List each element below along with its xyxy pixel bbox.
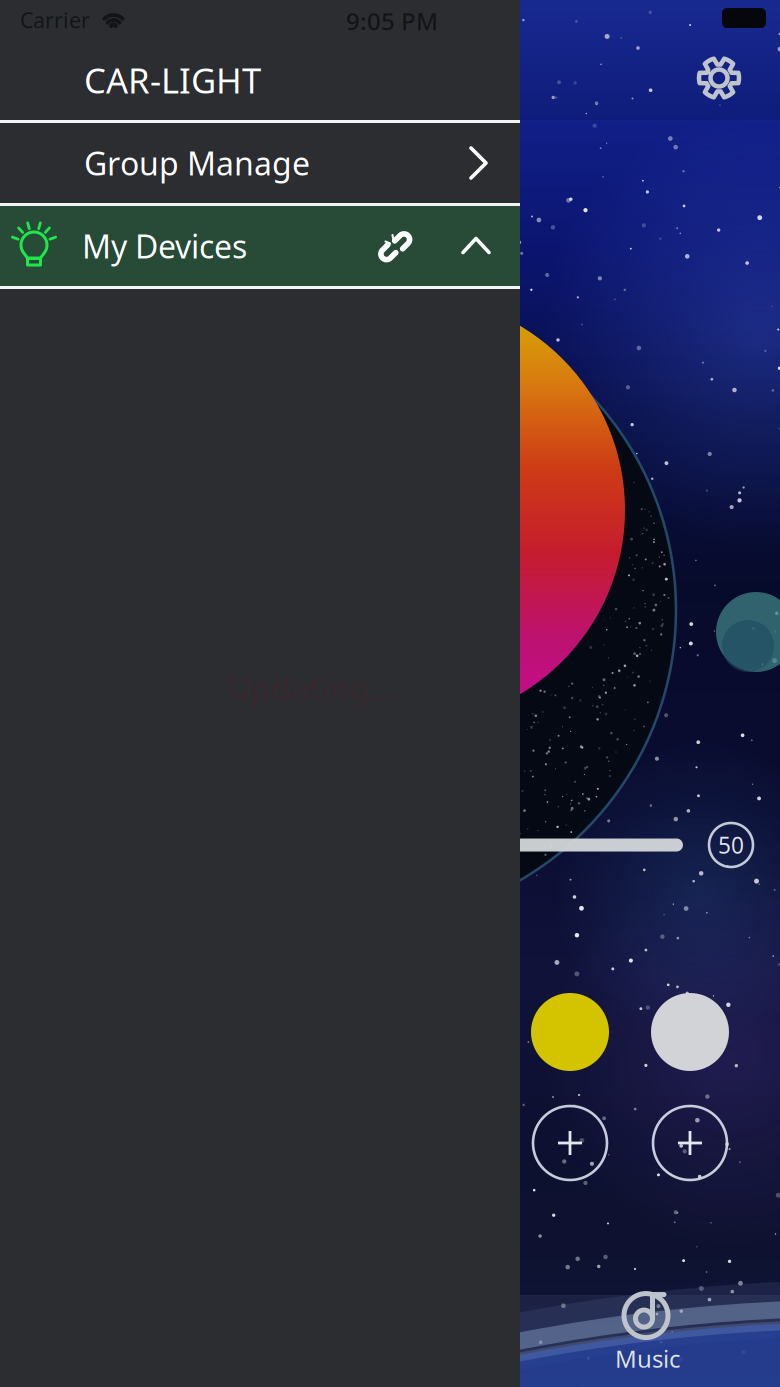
staticText: Music [615,1343,681,1374]
staticText: Group Manage [84,142,310,184]
staticText: CAR-LIGHT [84,57,261,103]
staticText: 50 [718,830,744,860]
staticText: My Devices [82,225,247,267]
staticText: 9:05 PM [346,5,438,37]
button[interactable]: Group Manage [0,123,520,203]
button[interactable]: Music [563,1284,733,1376]
staticText: Carrier [20,6,90,34]
button[interactable]: Add [530,1103,610,1183]
button[interactable]: Add [650,1103,730,1183]
button[interactable]: Settings [683,42,755,114]
button[interactable]: My Devices [0,206,520,286]
button[interactable]: White preset [651,993,729,1071]
staticText: Updating... [228,667,396,709]
button[interactable]: Yellow preset [531,993,609,1071]
